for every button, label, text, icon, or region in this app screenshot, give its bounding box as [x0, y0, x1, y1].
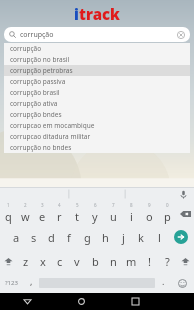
- staticText: k: [138, 230, 144, 245]
- button[interactable]: x: [34, 249, 51, 273]
- staticText: corrupção bndes: [10, 110, 62, 119]
- staticText: i: [130, 209, 133, 224]
- staticText: corrupção ativa: [10, 99, 58, 108]
- staticText: corrupção petrobras: [10, 66, 73, 75]
- button[interactable]: Emoji: [171, 273, 194, 293]
- staticText: ?: [165, 254, 170, 269]
- button[interactable]: corrupcao em mocambique: [4, 120, 190, 131]
- staticText: 5: [76, 202, 79, 208]
- staticText: 2: [24, 202, 27, 208]
- staticText: corrupção: [20, 30, 54, 40]
- button[interactable]: 8: [122, 201, 140, 225]
- button[interactable]: Voice input: [177, 188, 189, 200]
- staticText: w: [21, 209, 30, 224]
- staticText: corrupção no bndes: [10, 143, 72, 152]
- button[interactable]: corrupcao ditadura militar: [4, 131, 190, 142]
- button[interactable]: corrupção bndes: [4, 109, 190, 120]
- button[interactable]: z: [17, 249, 34, 273]
- button[interactable]: j: [114, 225, 132, 249]
- button[interactable]: v: [68, 249, 86, 273]
- button[interactable]: corrupção: [4, 43, 190, 54]
- staticText: corrupcao em mocambique: [10, 121, 95, 130]
- button[interactable]: Recents: [108, 293, 162, 310]
- button[interactable]: Home: [54, 293, 108, 310]
- button[interactable]: 0: [158, 201, 176, 225]
- staticText: 8: [130, 202, 133, 208]
- button[interactable]: Search: [168, 225, 194, 249]
- staticText: c: [57, 254, 63, 269]
- staticText: z: [23, 254, 29, 269]
- button[interactable]: 2: [17, 201, 34, 225]
- staticText: q: [5, 209, 12, 224]
- staticText: o: [146, 209, 153, 224]
- button[interactable]: 1: [0, 201, 17, 225]
- staticText: m: [126, 254, 137, 269]
- button[interactable]: b: [86, 249, 104, 273]
- button[interactable]: corrupção petrobras: [4, 65, 190, 76]
- staticText: e: [39, 209, 46, 224]
- staticText: 4: [58, 202, 61, 208]
- button[interactable]: d: [42, 225, 60, 249]
- staticText: 0: [166, 202, 169, 208]
- staticText: 9: [148, 202, 151, 208]
- staticText: h: [102, 230, 109, 245]
- staticText: x: [40, 254, 46, 269]
- button[interactable]: corrupção no bndes: [4, 142, 190, 153]
- button[interactable]: h: [96, 225, 114, 249]
- button[interactable]: corrupção passiva: [4, 76, 190, 87]
- staticText: t: [75, 209, 79, 224]
- button[interactable]: !: [140, 249, 158, 273]
- button[interactable]: 3: [34, 201, 51, 225]
- staticText: 6: [94, 202, 97, 208]
- staticText: ?123: [5, 279, 18, 287]
- button[interactable]: ?: [158, 249, 176, 273]
- button[interactable]: .: [155, 273, 171, 293]
- staticText: corrupção brasil: [10, 88, 60, 97]
- staticText: v: [74, 254, 80, 269]
- button[interactable]: 7: [104, 201, 122, 225]
- button[interactable]: f: [60, 225, 78, 249]
- button[interactable]: ,: [23, 273, 39, 293]
- staticText: y: [92, 209, 98, 224]
- button[interactable]: Backspace: [176, 201, 194, 225]
- staticText: corrupção: [10, 44, 42, 53]
- button[interactable]: Back: [0, 293, 54, 310]
- staticText: i: [74, 4, 79, 24]
- button[interactable]: Shift: [176, 249, 194, 273]
- button[interactable]: corrupção no brasil: [4, 54, 190, 65]
- staticText: .: [162, 275, 165, 287]
- button[interactable]: s: [25, 225, 42, 249]
- button[interactable]: 5: [68, 201, 86, 225]
- staticText: n: [110, 254, 117, 269]
- staticText: corrupção no brasil: [10, 55, 70, 64]
- button[interactable]: 4: [51, 201, 68, 225]
- button[interactable]: 6: [86, 201, 104, 225]
- staticText: s: [31, 230, 37, 245]
- staticText: l: [158, 230, 161, 245]
- staticText: track: [79, 4, 120, 24]
- staticText: f: [67, 230, 71, 245]
- button[interactable]: 9: [140, 201, 158, 225]
- staticText: 3: [41, 202, 44, 208]
- button[interactable]: Clear query: [176, 30, 186, 40]
- staticText: 1: [7, 202, 10, 208]
- staticText: 7: [112, 202, 115, 208]
- button[interactable]: g: [78, 225, 96, 249]
- button[interactable]: l: [150, 225, 168, 249]
- button[interactable]: corrupção brasil: [4, 87, 190, 98]
- staticText: b: [92, 254, 99, 269]
- button[interactable]: Shift: [0, 249, 17, 273]
- button[interactable]: k: [132, 225, 150, 249]
- staticText: corrupcao ditadura militar: [10, 132, 91, 141]
- button[interactable]: n: [104, 249, 122, 273]
- button[interactable]: ?123: [0, 273, 23, 293]
- button[interactable]: corrupção ativa: [4, 98, 190, 109]
- staticText: j: [122, 230, 125, 245]
- button[interactable]: Search: [4, 27, 190, 42]
- button[interactable]: a: [8, 225, 25, 249]
- other: Search: [9, 31, 16, 38]
- button[interactable]: m: [122, 249, 140, 273]
- staticText: corrupção passiva: [10, 77, 66, 86]
- button[interactable]: c: [51, 249, 68, 273]
